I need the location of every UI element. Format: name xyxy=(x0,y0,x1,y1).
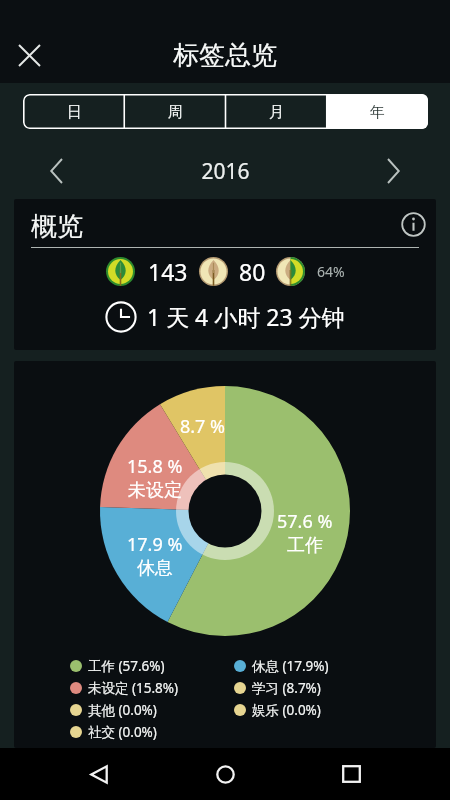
button[interactable]: Close xyxy=(6,32,52,78)
staticText: 年 xyxy=(370,103,385,122)
staticText: 工作 xyxy=(287,534,323,557)
staticText: 8.7 % xyxy=(180,414,226,439)
staticText: 17.9 % xyxy=(127,532,183,557)
staticText: 日 xyxy=(67,103,82,122)
button[interactable]: Home xyxy=(207,756,243,792)
staticText: 休息 xyxy=(137,557,173,580)
staticText: 工作 (57.6%) xyxy=(88,657,165,675)
button[interactable]: 社交 (0.0%) xyxy=(70,723,157,741)
button[interactable]: 年 xyxy=(327,94,428,129)
staticText: 概览 xyxy=(31,210,83,243)
button[interactable]: Recent apps xyxy=(333,756,369,792)
staticText: 15.8 % xyxy=(127,454,183,479)
staticText: 未设定 (15.8%) xyxy=(88,679,179,697)
button[interactable]: Info xyxy=(397,208,429,240)
staticText: 1 天 4 小时 23 分钟 xyxy=(147,301,345,332)
staticText: 未设定 xyxy=(128,479,182,502)
staticText: 休息 (17.9%) xyxy=(252,657,329,675)
button[interactable]: 学习 (8.7%) xyxy=(234,679,321,697)
button[interactable]: 月 xyxy=(226,94,327,129)
staticText: 143 xyxy=(148,256,188,286)
button[interactable]: 周 xyxy=(125,94,226,129)
staticText: 其他 (0.0%) xyxy=(88,701,157,719)
button[interactable]: 工作 (57.6%) xyxy=(70,657,165,675)
button[interactable]: 娱乐 (0.0%) xyxy=(234,701,321,719)
button[interactable]: 其他 (0.0%) xyxy=(70,701,157,719)
button[interactable]: 日 xyxy=(23,94,125,129)
staticText: 周 xyxy=(168,103,183,122)
staticText: 57.6 % xyxy=(277,509,333,534)
button[interactable]: Previous year xyxy=(34,148,79,193)
staticText: 64% xyxy=(317,262,345,281)
staticText: 2016 xyxy=(201,157,250,186)
button[interactable]: Next year xyxy=(371,148,416,193)
staticText: 标签总览 xyxy=(173,39,277,72)
staticText: 社交 (0.0%) xyxy=(88,723,157,741)
button[interactable]: 未设定 (15.8%) xyxy=(70,679,179,697)
staticText: 学习 (8.7%) xyxy=(252,679,321,697)
staticText: 娱乐 (0.0%) xyxy=(252,701,321,719)
button[interactable]: 休息 (17.9%) xyxy=(234,657,329,675)
staticText: 80 xyxy=(239,256,266,286)
button[interactable]: Back xyxy=(81,756,117,792)
staticText: 月 xyxy=(269,103,284,122)
